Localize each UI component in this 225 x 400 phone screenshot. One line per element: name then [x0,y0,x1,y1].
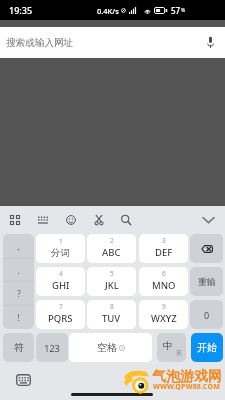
staticText: 57 [171,5,181,16]
button[interactable]: Backspace [190,234,223,263]
button[interactable]: , [3,234,34,258]
staticText: 1 [59,237,63,246]
button[interactable]: Number pad [32,209,54,231]
button[interactable]: 空格 [69,333,152,362]
staticText: 0.4K/s [97,6,119,16]
staticText: WWW.QPW88.COM [153,382,220,392]
button[interactable]: 6 [139,267,188,296]
staticText: 2 [110,236,114,245]
staticText: 123 [44,342,60,354]
staticText: 9 [162,302,166,311]
staticText: , [17,241,20,252]
button[interactable]: 3 [139,234,188,263]
staticText: 7 [59,302,63,311]
staticText: 19:35 [9,4,33,16]
staticText: 气泡游戏网 [152,368,222,386]
button[interactable]: 开始 [191,333,223,362]
staticText: 3 [162,236,166,245]
button[interactable]: Apps [4,209,26,231]
staticText: JKL [105,279,119,292]
staticText: TUV [102,312,121,325]
button[interactable]: 7 [36,300,85,329]
staticText: 4 [59,269,63,278]
staticText: DEF [155,246,173,259]
staticText: 6 [162,269,166,278]
button[interactable]: 123 [36,333,68,362]
staticText: 5 [110,269,114,278]
button[interactable]: 4 [36,267,85,296]
staticText: 英 [176,349,182,357]
button[interactable]: 重输 [190,267,223,296]
staticText: 0 [204,309,210,321]
button[interactable]: 5 [87,267,136,296]
button[interactable]: 符 [3,333,34,362]
staticText: 符 [14,341,24,354]
button[interactable]: 搜索或输入网址 [0,27,225,58]
button[interactable]: ? [3,281,34,305]
button[interactable]: . [3,258,34,282]
staticText: 空格 [97,341,117,354]
button[interactable]: 中 [157,333,186,362]
staticText: PQRS [48,312,73,325]
button[interactable]: 8 [87,300,136,329]
staticText: 分词 [51,247,70,259]
button[interactable]: 1 [36,234,85,263]
staticText: ! [17,312,20,323]
button[interactable]: Clipboard [88,209,110,231]
button[interactable]: 9 [139,300,188,329]
button[interactable]: Voice search [199,31,222,54]
staticText: % [181,7,186,14]
button[interactable]: Hide keyboard [196,208,220,232]
staticText: 中 [163,340,173,352]
staticText: GHI [52,279,70,292]
button[interactable]: 2 [87,234,136,263]
button[interactable]: Emoji [60,209,82,231]
staticText: 8 [110,302,114,311]
staticText: ABC [102,246,121,259]
button[interactable]: Switch input method [12,370,35,389]
staticText: 开始 [197,341,217,354]
staticText: ? [17,288,21,299]
button[interactable]: ! [3,305,34,329]
button[interactable]: 0 [190,300,223,329]
staticText: MNO [152,279,176,292]
staticText: 搜索或输入网址 [6,37,74,49]
button[interactable]: Search [115,209,137,231]
staticText: . [17,265,20,276]
staticText: WXYZ [151,312,177,325]
staticText: 重输 [198,276,216,287]
